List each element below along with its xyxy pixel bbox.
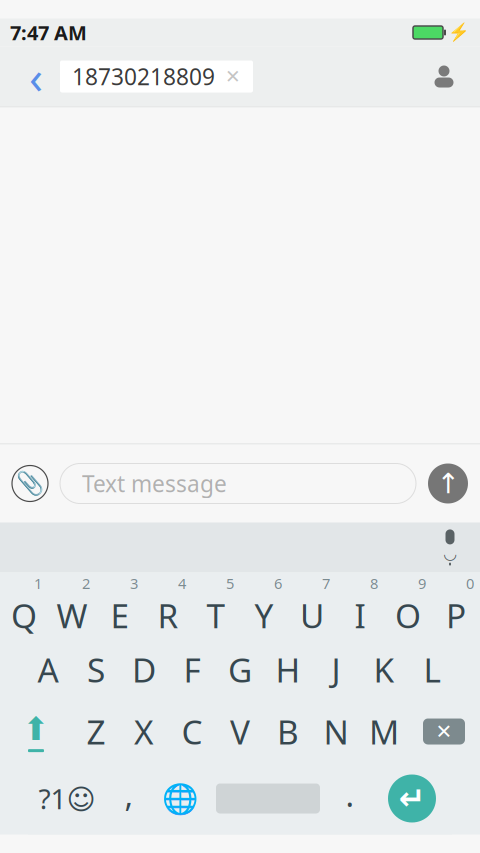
staticText: 18730218809 xyxy=(72,61,215,91)
staticText: ✕ xyxy=(435,720,452,743)
staticText: B xyxy=(277,709,299,754)
staticText: G xyxy=(228,647,252,692)
button[interactable]: B xyxy=(264,700,312,762)
staticText: P xyxy=(446,593,466,637)
staticText: 6 xyxy=(274,574,282,593)
staticText: 8 xyxy=(370,574,378,593)
button[interactable]: Voice input xyxy=(428,525,472,569)
button[interactable]: L xyxy=(408,638,456,700)
staticText: 3 xyxy=(130,574,138,593)
button[interactable]: 1 xyxy=(0,572,48,638)
staticText: V xyxy=(230,709,250,754)
button[interactable]: 3 xyxy=(96,572,144,638)
button[interactable]: M xyxy=(360,700,408,762)
staticText: 📎 xyxy=(16,471,44,496)
staticText: ✕ xyxy=(225,66,241,87)
staticText: X xyxy=(134,709,154,754)
button[interactable]: 9 xyxy=(384,572,432,638)
staticText: ‹ xyxy=(29,46,43,107)
button[interactable]: C xyxy=(168,700,216,762)
staticText: 🌐 xyxy=(161,782,198,815)
staticText: 1 xyxy=(34,574,42,593)
staticText: Z xyxy=(86,709,105,754)
staticText: W xyxy=(56,593,87,637)
staticText: F xyxy=(183,647,200,692)
button[interactable]: 4 xyxy=(144,572,192,638)
staticText: ?1☺ xyxy=(38,780,95,817)
staticText: Y xyxy=(254,593,273,637)
staticText: T xyxy=(206,593,225,637)
staticText: ◡ xyxy=(444,544,456,563)
button[interactable]: Contacts xyxy=(420,52,468,100)
staticText: N xyxy=(323,709,348,754)
button[interactable]: 6 xyxy=(240,572,288,638)
button[interactable]: Send xyxy=(428,463,468,503)
button[interactable]: 18730218809 xyxy=(60,60,253,92)
button[interactable]: G xyxy=(216,638,264,700)
staticText: S xyxy=(87,647,105,692)
button[interactable]: 5 xyxy=(192,572,240,638)
button[interactable]: K xyxy=(360,638,408,700)
button[interactable]: . xyxy=(328,762,372,834)
staticText: C xyxy=(181,709,202,754)
staticText: ↵ xyxy=(398,780,425,817)
staticText: 4 xyxy=(178,574,186,593)
button[interactable]: A xyxy=(24,638,72,700)
staticText: M xyxy=(369,709,399,754)
button[interactable]: Space xyxy=(208,762,328,834)
button[interactable]: , xyxy=(106,762,152,834)
staticText: J xyxy=(331,647,340,692)
staticText: K xyxy=(373,647,394,692)
button[interactable]: Attach xyxy=(12,465,48,501)
button[interactable]: 0 xyxy=(432,572,480,638)
button[interactable]: Change keyboard xyxy=(152,762,208,834)
staticText: O xyxy=(395,593,421,637)
button[interactable]: 2 xyxy=(48,572,96,638)
button[interactable]: 7 xyxy=(288,572,336,638)
button[interactable]: Backspace xyxy=(408,700,480,762)
button[interactable]: N xyxy=(312,700,360,762)
staticText: Q xyxy=(11,593,37,637)
button[interactable]: Symbols and emoji xyxy=(28,762,106,834)
staticText: E xyxy=(110,593,129,637)
staticText: ⚡ xyxy=(448,23,470,42)
button[interactable]: D xyxy=(120,638,168,700)
staticText: U xyxy=(300,593,324,637)
staticText: 5 xyxy=(226,574,234,593)
staticText: 2 xyxy=(82,574,90,593)
staticText: H xyxy=(275,647,300,692)
button[interactable]: Back xyxy=(12,52,60,100)
staticText: D xyxy=(132,647,156,692)
button[interactable]: F xyxy=(168,638,216,700)
button[interactable]: Enter xyxy=(372,762,452,834)
button[interactable]: Shift xyxy=(0,700,72,762)
staticText: A xyxy=(37,647,58,692)
staticText: Text message xyxy=(82,468,227,498)
button[interactable]: Text message xyxy=(60,463,416,503)
staticText: I xyxy=(354,593,365,637)
button[interactable]: V xyxy=(216,700,264,762)
button[interactable]: S xyxy=(72,638,120,700)
staticText: ⬆ xyxy=(22,711,49,747)
button[interactable]: H xyxy=(264,638,312,700)
button[interactable]: J xyxy=(312,638,360,700)
staticText: , xyxy=(124,773,133,816)
staticText: . xyxy=(345,773,354,816)
button[interactable]: 8 xyxy=(336,572,384,638)
button[interactable]: Z xyxy=(72,700,120,762)
staticText: ↑ xyxy=(436,468,459,499)
staticText: 7 xyxy=(322,574,330,593)
staticText: 0 xyxy=(466,574,474,593)
staticText: R xyxy=(157,593,178,637)
staticText: 7:47 AM xyxy=(10,19,87,46)
button[interactable]: X xyxy=(120,700,168,762)
staticText: 9 xyxy=(418,574,426,593)
staticText: L xyxy=(423,647,440,692)
